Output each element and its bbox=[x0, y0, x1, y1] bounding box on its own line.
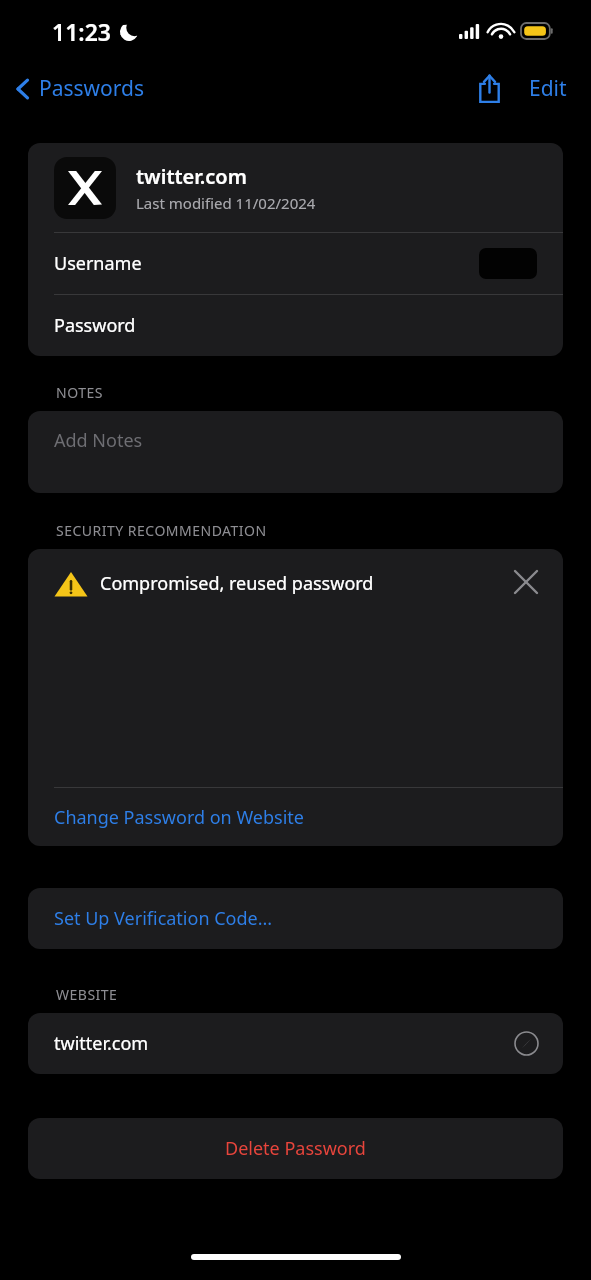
staticText: Change Password on Website bbox=[54, 805, 304, 830]
button[interactable]: Passwords bbox=[0, 68, 157, 109]
staticText: twitter.com bbox=[54, 1031, 149, 1056]
button[interactable]: Set Up Verification Code... bbox=[28, 888, 563, 949]
button[interactable]: Add Notes bbox=[28, 411, 563, 493]
button[interactable]: Delete Password bbox=[28, 1118, 563, 1179]
staticText: 11:23 bbox=[52, 16, 111, 47]
button[interactable]: Change Password on Website bbox=[28, 788, 563, 846]
other: Open in Safari bbox=[514, 1031, 539, 1056]
staticText: Password bbox=[54, 313, 136, 338]
staticText: SECURITY RECOMMENDATION bbox=[56, 521, 267, 540]
staticText: Set Up Verification Code... bbox=[54, 906, 273, 931]
button[interactable]: Edit bbox=[523, 66, 573, 111]
staticText: Passwords bbox=[39, 74, 145, 103]
button[interactable]: Share bbox=[470, 66, 509, 111]
staticText: WEBSITE bbox=[56, 985, 118, 1004]
staticText: Compromised, reused password bbox=[100, 571, 374, 596]
button[interactable]: twitter.com bbox=[28, 1013, 563, 1074]
staticText: Username bbox=[54, 251, 142, 276]
staticText: twitter.com bbox=[136, 163, 247, 190]
staticText: Delete Password bbox=[225, 1136, 366, 1161]
staticText: Last modified 11/02/2024 bbox=[136, 193, 316, 213]
button[interactable]: Username bbox=[28, 233, 563, 294]
staticText: NOTES bbox=[56, 383, 103, 402]
button[interactable]: Dismiss bbox=[511, 567, 541, 597]
staticText: Add Notes bbox=[54, 428, 143, 453]
button[interactable]: Password bbox=[28, 295, 563, 356]
staticText: Edit bbox=[529, 74, 567, 103]
